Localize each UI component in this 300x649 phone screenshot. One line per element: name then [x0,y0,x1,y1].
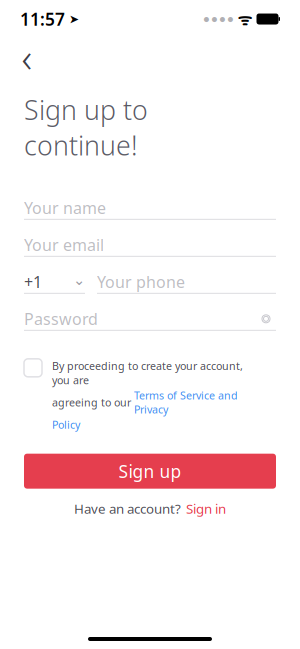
staticText: Password [24,308,98,329]
staticText: ⌄ [73,271,85,288]
staticText: ● ● ● ● [203,15,233,23]
staticText: Your name [24,197,106,218]
staticText: +1 [24,271,42,292]
button[interactable]: Agree to terms [24,359,42,377]
staticText: Terms of Service and Privacy [134,388,238,416]
staticText: Sign up [118,460,181,483]
staticText: 11:57 [20,7,65,30]
button[interactable]: +1 [24,271,85,294]
staticText: Your email [24,234,104,255]
staticText: ‹ [21,30,32,83]
staticText: Sign in [186,500,226,517]
button[interactable]: Back [10,40,44,74]
staticText: By proceeding to create your account, yo… [52,359,243,387]
staticText: ➤ [65,12,79,26]
button[interactable]: Show password [256,309,276,329]
staticText: Policy [52,417,80,432]
staticText: ᯤ [233,8,256,30]
staticText: agreeing to our [52,395,134,409]
button[interactable]: Have an account? [24,497,276,521]
button[interactable]: Sign up [24,454,276,489]
staticText: Have an account? [74,500,181,517]
button[interactable]: By proceeding to create your account, yo… [52,359,243,432]
staticText: Sign up to continue! [24,92,148,163]
staticText: Your phone [97,271,185,292]
